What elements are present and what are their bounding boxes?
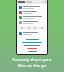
button[interactable]: Option bbox=[19, 38, 45, 41]
button[interactable]: Option bbox=[19, 41, 45, 44]
button[interactable]: More options bbox=[17, 0, 47, 4]
button[interactable]: Option bbox=[19, 47, 45, 50]
button[interactable] bbox=[17, 20, 47, 25]
button[interactable] bbox=[17, 5, 47, 10]
button[interactable]: Option bbox=[19, 44, 45, 47]
button[interactable] bbox=[17, 15, 47, 20]
button[interactable] bbox=[17, 10, 47, 15]
button[interactable] bbox=[19, 31, 45, 36]
button[interactable] bbox=[19, 50, 45, 53]
staticText: Securely share your files on the go bbox=[12, 57, 52, 68]
